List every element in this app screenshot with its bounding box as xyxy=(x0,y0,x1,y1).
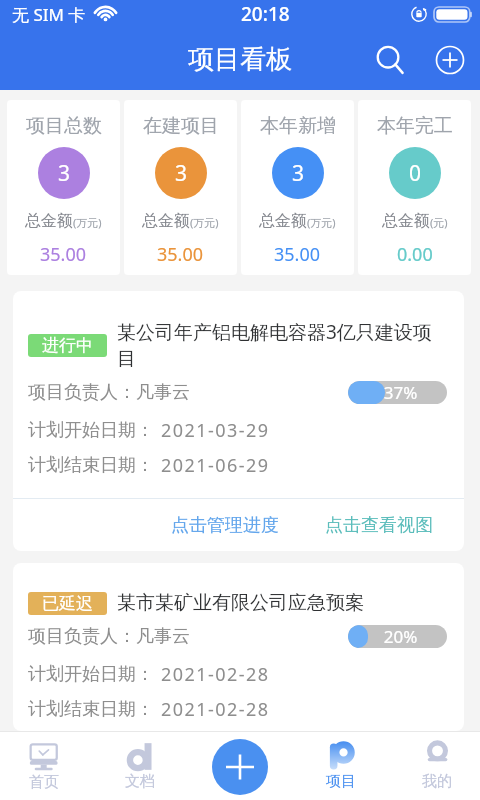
staticText: 项目总数 xyxy=(26,114,102,138)
button[interactable]: 本年新增 xyxy=(241,100,354,275)
staticText: 总金额 xyxy=(142,211,190,231)
button[interactable]: 本年完工 xyxy=(358,100,471,275)
staticText: 35.00 xyxy=(157,242,204,267)
button[interactable]: 点击管理进度 xyxy=(168,506,282,545)
staticText: 3 xyxy=(175,159,188,188)
staticText: 总金额 xyxy=(382,211,430,231)
button[interactable]: 点击查看视图 xyxy=(322,506,436,545)
staticText: 项目负责人： xyxy=(28,625,136,648)
staticText: 2021-03-29 xyxy=(161,418,270,443)
button[interactable]: Add xyxy=(428,38,472,82)
staticText: 20% xyxy=(351,625,447,648)
staticText: 某市某矿业有限公司应急预案 xyxy=(117,591,364,615)
button[interactable]: 我的 xyxy=(389,731,480,800)
staticText: (元) xyxy=(430,215,448,230)
staticText: 凡事云 xyxy=(136,381,190,404)
button[interactable]: 首页 xyxy=(0,731,92,800)
staticText: 进行中 xyxy=(42,335,93,356)
staticText: 在建项目 xyxy=(143,114,219,138)
staticText: 20:18 xyxy=(241,1,290,27)
button[interactable]: Add project xyxy=(212,739,268,795)
button[interactable]: 项目 xyxy=(293,731,389,800)
staticText: 2021-06-29 xyxy=(161,453,270,478)
staticText: 3 xyxy=(292,159,305,188)
staticText: 我的 xyxy=(422,772,452,791)
staticText: 总金额 xyxy=(259,211,307,231)
staticText: 37% xyxy=(351,381,447,404)
staticText: 已延迟 xyxy=(42,593,93,614)
staticText: 本年完工 xyxy=(377,114,453,138)
staticText: 2021-02-28 xyxy=(161,697,270,722)
staticText: 计划结束日期： xyxy=(28,454,154,477)
staticText: 35.00 xyxy=(40,242,87,267)
button[interactable]: 在建项目 xyxy=(124,100,237,275)
staticText: 计划开始日期： xyxy=(28,663,154,686)
staticText: (万元) xyxy=(307,215,336,230)
staticText: 35.00 xyxy=(274,242,321,267)
staticText: 项目 xyxy=(326,772,356,791)
staticText: 3 xyxy=(58,159,71,188)
staticText: 本年新增 xyxy=(260,114,336,138)
staticText: 某公司年产铝电解电容器3亿只建设项目 xyxy=(117,319,447,371)
staticText: 计划开始日期： xyxy=(28,419,154,442)
button[interactable]: 进行中 xyxy=(13,291,464,551)
staticText: 项目负责人： xyxy=(28,381,136,404)
staticText: 点击查看视图 xyxy=(325,514,433,537)
staticText: (万元) xyxy=(73,215,102,230)
staticText: 0 xyxy=(409,159,422,188)
staticText: (万元) xyxy=(190,215,219,230)
staticText: 首页 xyxy=(29,773,59,792)
button[interactable]: 文档 xyxy=(92,731,188,800)
staticText: 0.00 xyxy=(397,242,433,267)
staticText: 2021-02-28 xyxy=(161,662,270,687)
button[interactable]: Search xyxy=(368,38,412,82)
staticText: 总金额 xyxy=(25,211,73,231)
staticText: 无 SIM 卡 xyxy=(12,3,86,26)
button[interactable]: 已延迟 xyxy=(13,563,464,731)
staticText: 文档 xyxy=(125,772,155,791)
staticText: 项目看板 xyxy=(188,43,292,76)
staticText: 计划结束日期： xyxy=(28,698,154,721)
staticText: 凡事云 xyxy=(136,625,190,648)
button[interactable]: 项目总数 xyxy=(7,100,120,275)
staticText: 点击管理进度 xyxy=(171,514,279,537)
